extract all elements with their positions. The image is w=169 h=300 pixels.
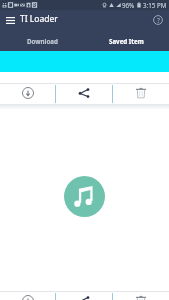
button[interactable]: Download	[0, 84, 55, 104]
button[interactable]: Download	[0, 292, 55, 300]
staticText: Download	[27, 37, 58, 45]
staticText: ?	[157, 16, 160, 25]
button[interactable]: Saved Item	[84, 30, 169, 51]
button[interactable]: Delete	[113, 292, 169, 300]
button[interactable]: Download	[0, 30, 84, 51]
button[interactable]: Share	[56, 292, 112, 300]
staticText: Saved Item	[109, 37, 144, 45]
button[interactable]: Share	[56, 84, 112, 104]
button[interactable]: Help	[147, 10, 169, 30]
staticText: 96%	[122, 1, 135, 9]
staticText: TI Loader	[20, 13, 58, 25]
button[interactable]: Delete	[113, 84, 169, 104]
button[interactable]: Audio file	[64, 176, 105, 217]
staticText: 3:15 PM	[143, 1, 167, 9]
button[interactable]: Open navigation drawer	[0, 10, 20, 30]
